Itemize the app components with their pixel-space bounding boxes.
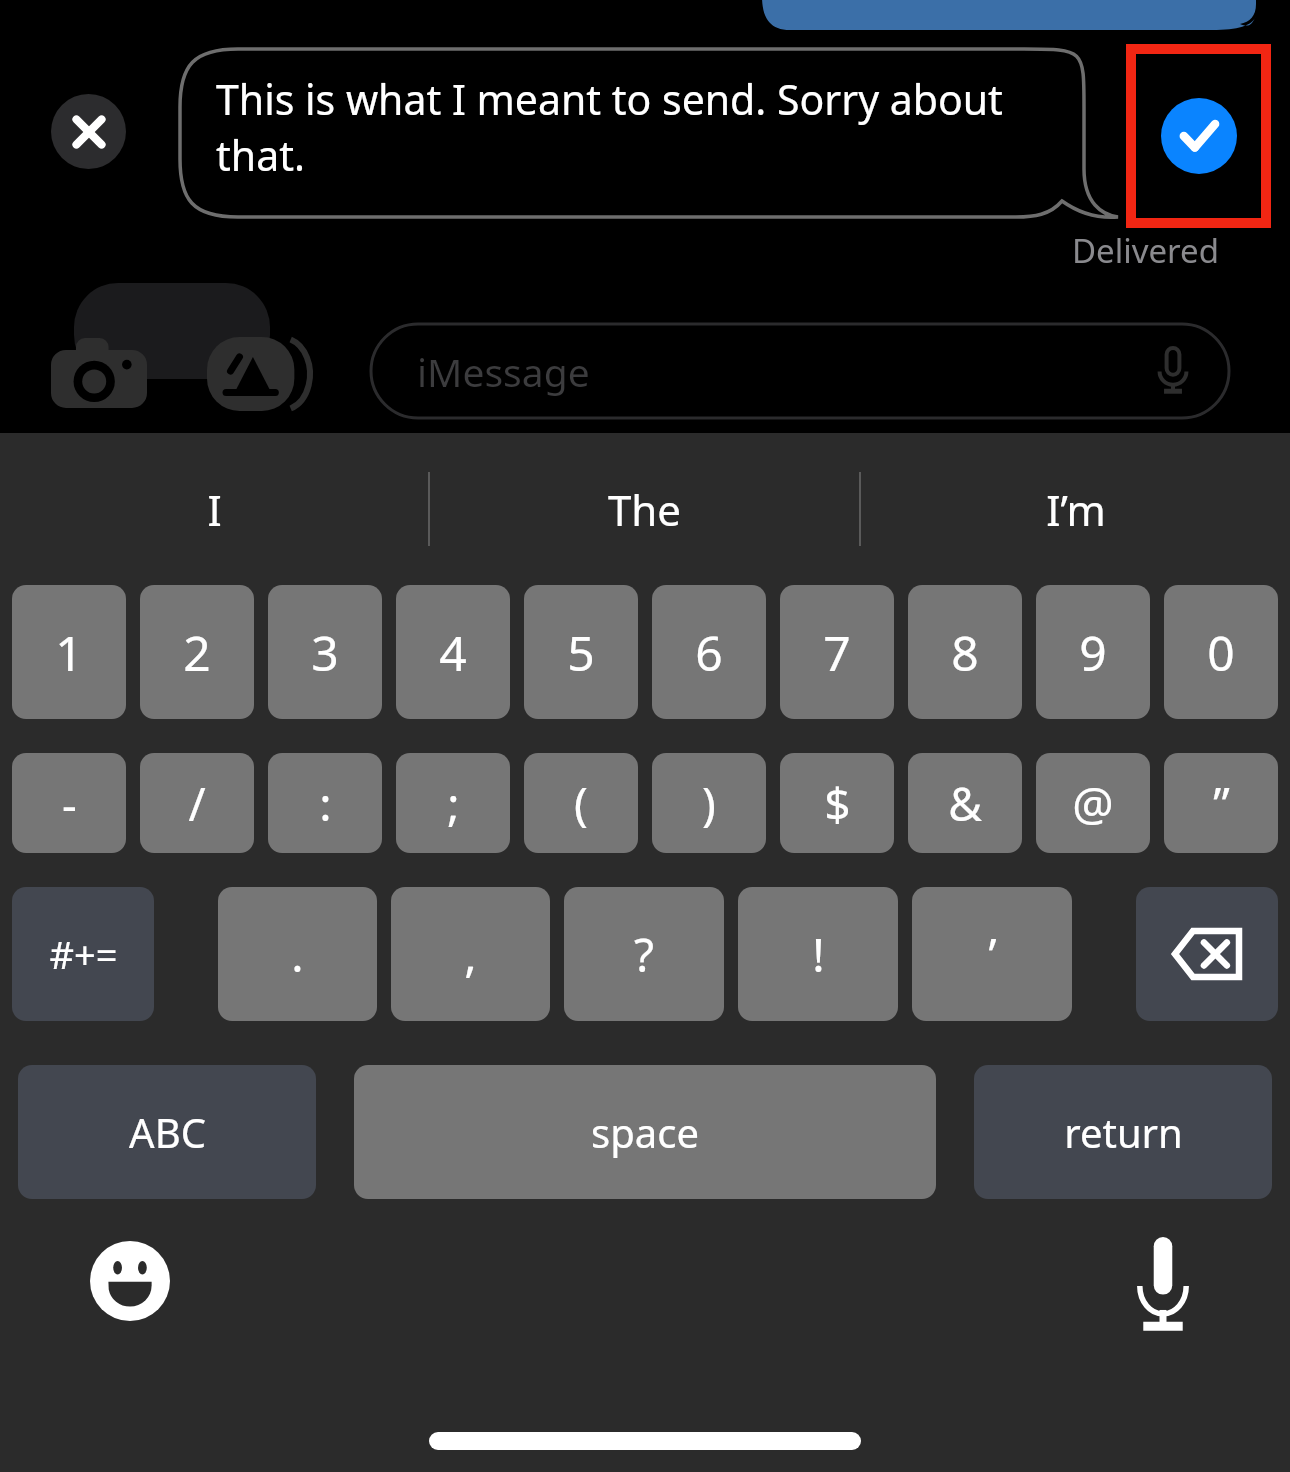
staticText: / (188, 772, 206, 835)
button[interactable]: I (0, 433, 428, 585)
button[interactable]: Confirm edit (1161, 98, 1237, 174)
button[interactable]: $ (780, 753, 894, 853)
button[interactable]: 8 (908, 585, 1022, 719)
button[interactable]: ) (652, 753, 766, 853)
staticText: : (319, 772, 332, 835)
button[interactable]: @ (1036, 753, 1150, 853)
staticText: 8 (951, 620, 979, 685)
button[interactable]: 2 (140, 585, 254, 719)
button[interactable]: - (12, 753, 126, 853)
button[interactable]: Backspace (1136, 887, 1278, 1021)
staticText: The (608, 481, 681, 538)
button[interactable]: Camera (51, 338, 147, 408)
button[interactable]: ! (738, 887, 898, 1021)
staticText: 1 (55, 620, 83, 685)
button[interactable]: & (908, 753, 1022, 853)
button[interactable]: ( (524, 753, 638, 853)
staticText: Delivered (1072, 228, 1219, 273)
staticText: . (291, 923, 304, 986)
button[interactable]: . (218, 887, 377, 1021)
button[interactable]: ABC (18, 1065, 316, 1199)
staticText: I (207, 481, 222, 538)
button[interactable]: ” (1164, 753, 1278, 853)
button[interactable]: Cancel edit (51, 94, 126, 169)
staticText: space (591, 1105, 699, 1159)
staticText: ’ (988, 923, 997, 986)
staticText: , (464, 923, 477, 986)
button[interactable]: , (391, 887, 550, 1021)
staticText: I’m (1046, 481, 1106, 538)
staticText: 6 (695, 620, 723, 685)
staticText: ( (574, 772, 588, 835)
staticText: ) (702, 772, 716, 835)
staticText: 0 (1207, 620, 1235, 685)
staticText: #+= (49, 928, 118, 980)
button[interactable]: space (354, 1065, 936, 1199)
staticText: This is what I meant to send. Sorry abou… (216, 71, 1058, 183)
button[interactable]: ’ (912, 887, 1072, 1021)
button[interactable]: 7 (780, 585, 894, 719)
button[interactable]: Emoji keyboard (90, 1241, 170, 1321)
staticText: 7 (823, 620, 851, 685)
button[interactable]: 6 (652, 585, 766, 719)
button[interactable]: 9 (1036, 585, 1150, 719)
staticText: ! (812, 923, 825, 986)
staticText: - (62, 772, 77, 835)
button[interactable]: Dictation (1134, 1237, 1192, 1333)
staticText: 9 (1079, 620, 1107, 685)
staticText: ” (1213, 772, 1230, 835)
staticText: 3 (311, 620, 339, 685)
button[interactable]: return (974, 1065, 1272, 1199)
staticText: 4 (439, 620, 467, 685)
button[interactable]: I’m (861, 433, 1290, 585)
button[interactable]: #+= (12, 887, 154, 1021)
staticText: ; (447, 772, 460, 835)
button[interactable]: 3 (268, 585, 382, 719)
button[interactable]: This is what I meant to send. Sorry abou… (178, 47, 1120, 219)
button[interactable]: 5 (524, 585, 638, 719)
staticText: ABC (129, 1105, 206, 1159)
button[interactable]: / (140, 753, 254, 853)
staticText: return (1064, 1105, 1183, 1159)
staticText: iMessage (417, 345, 590, 398)
staticText: 2 (183, 620, 211, 685)
button[interactable]: ? (564, 887, 724, 1021)
button[interactable]: The (430, 433, 859, 585)
staticText: @ (1072, 772, 1114, 835)
staticText: ? (634, 923, 654, 986)
button[interactable]: ; (396, 753, 510, 853)
button[interactable]: Apps (207, 337, 319, 411)
staticText: $ (824, 772, 851, 835)
button[interactable]: 0 (1164, 585, 1278, 719)
button[interactable]: 4 (396, 585, 510, 719)
button[interactable]: iMessage (371, 324, 1229, 418)
staticText: & (948, 772, 982, 835)
staticText: 5 (567, 620, 595, 685)
button[interactable]: : (268, 753, 382, 853)
button[interactable]: 1 (12, 585, 126, 719)
